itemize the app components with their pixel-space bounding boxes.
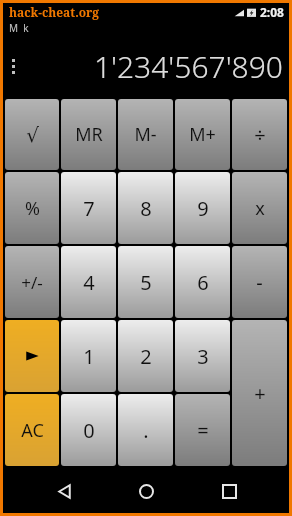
button[interactable]: + — [232, 320, 287, 466]
button[interactable]: - — [232, 246, 287, 318]
staticText: M k — [9, 21, 29, 35]
staticText: hack-cheat.org — [9, 4, 100, 20]
staticText: 2 — [140, 343, 152, 370]
button[interactable]: M+ — [175, 99, 230, 170]
staticText: 7 — [83, 195, 95, 222]
staticText: ÷ — [254, 121, 266, 148]
button[interactable]: 6 — [175, 246, 230, 318]
button[interactable]: ÷ — [232, 99, 287, 170]
staticText: 1 — [83, 343, 95, 370]
staticText: 4 — [83, 269, 95, 296]
button[interactable]: 8 — [118, 172, 173, 244]
button[interactable]: Backspace — [5, 320, 59, 392]
button[interactable]: 3 — [175, 320, 230, 392]
button[interactable]: = — [175, 394, 230, 466]
staticText: 8 — [140, 195, 152, 222]
button[interactable]: 0 — [61, 394, 116, 466]
staticText: + — [254, 380, 266, 407]
staticText: 5 — [140, 269, 152, 296]
staticText: . — [143, 417, 149, 444]
staticText: 3 — [197, 343, 209, 370]
staticText: MR — [75, 122, 103, 147]
staticText: 1'234'567'890 — [93, 46, 283, 87]
staticText: 2:08 — [260, 4, 284, 20]
button[interactable]: 4 — [61, 246, 116, 318]
staticText: AC — [21, 418, 44, 443]
button[interactable]: 5 — [118, 246, 173, 318]
staticText: = — [197, 417, 209, 444]
staticText: M+ — [189, 122, 216, 147]
button[interactable]: Home — [124, 469, 168, 513]
staticText: M- — [134, 122, 157, 147]
button[interactable]: % — [5, 172, 59, 244]
staticText: % — [25, 196, 40, 221]
staticText: x — [255, 196, 265, 221]
button[interactable]: Back — [42, 469, 86, 513]
button[interactable]: . — [118, 394, 173, 466]
button[interactable]: AC — [5, 394, 59, 466]
staticText: 0 — [83, 417, 95, 444]
button[interactable]: 9 — [175, 172, 230, 244]
staticText: 6 — [197, 269, 209, 296]
staticText: 9 — [197, 195, 209, 222]
button[interactable]: More options — [8, 55, 19, 78]
button[interactable]: Recent apps — [207, 469, 251, 513]
button[interactable]: √ — [5, 99, 59, 170]
button[interactable]: 7 — [61, 172, 116, 244]
staticText: - — [256, 269, 263, 296]
button[interactable]: +/- — [5, 246, 59, 318]
button[interactable]: 1 — [61, 320, 116, 392]
button[interactable]: M- — [118, 99, 173, 170]
button[interactable]: 2 — [118, 320, 173, 392]
staticText: +/- — [21, 271, 43, 294]
button[interactable]: MR — [61, 99, 116, 170]
button[interactable]: x — [232, 172, 287, 244]
staticText: √ — [26, 123, 39, 146]
